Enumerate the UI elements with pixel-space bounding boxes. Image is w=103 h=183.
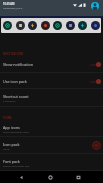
staticText: NOTIFICATIONS — [3, 52, 24, 55]
button[interactable]: User account — [91, 2, 99, 10]
staticText: THEME — [3, 116, 12, 119]
staticText: Show notification — [3, 62, 33, 67]
button[interactable]: Home — [44, 171, 57, 183]
staticText: 10:35 AM — [3, 2, 15, 6]
button[interactable]: Do not disturb — [41, 21, 50, 30]
button[interactable]: Recent apps — [72, 171, 85, 183]
button[interactable]: Wi-Fi — [3, 21, 12, 30]
staticText: Font pack — [3, 159, 20, 164]
staticText: 4 shortcuts — [3, 99, 16, 102]
staticText: Wednesday, July 6 — [3, 7, 23, 10]
button[interactable]: Location — [78, 21, 87, 30]
staticText: App icons — [3, 125, 20, 130]
staticText: Select application icons — [3, 130, 30, 133]
button[interactable]: Back — [15, 171, 28, 183]
button[interactable]: Auto rotate — [66, 21, 75, 30]
staticText: Shortcut count — [3, 94, 29, 99]
button[interactable]: Font pack — [0, 154, 103, 171]
staticText: None — [3, 147, 10, 150]
button[interactable]: Flashlight — [53, 21, 62, 30]
button[interactable]: Battery saver — [28, 21, 37, 30]
button[interactable]: App icons — [0, 120, 103, 137]
button[interactable]: Shortcut count — [0, 89, 103, 107]
staticText: Select a third party font — [3, 164, 30, 167]
staticText: Icon pack — [3, 142, 20, 147]
button[interactable]: Bluetooth — [16, 21, 25, 30]
button[interactable]: Icon pack — [0, 137, 103, 154]
button[interactable]: Airplane mode — [91, 21, 100, 30]
staticText: Use icon pack — [3, 79, 27, 84]
button[interactable]: Show notification — [0, 56, 103, 73]
button[interactable]: Use icon pack — [0, 73, 103, 89]
